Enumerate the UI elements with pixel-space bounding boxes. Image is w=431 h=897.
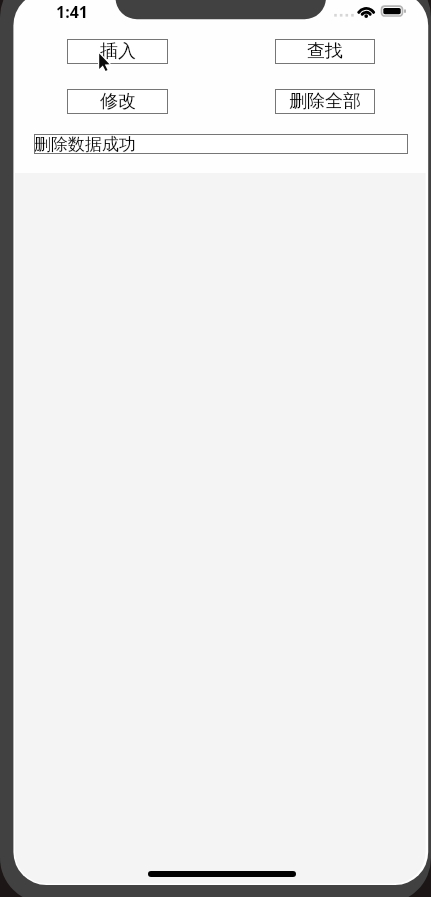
staticText: 1:41 bbox=[56, 1, 88, 23]
staticText: 删除全部 bbox=[289, 90, 361, 113]
staticText: 删除数据成功 bbox=[34, 134, 136, 154]
button[interactable]: 删除全部 bbox=[275, 89, 375, 114]
staticText: 查找 bbox=[307, 40, 343, 63]
button[interactable]: 删除数据成功 bbox=[34, 134, 408, 154]
staticText: 插入 bbox=[100, 40, 136, 63]
button[interactable]: 插入 bbox=[67, 39, 168, 64]
button[interactable]: 修改 bbox=[67, 89, 168, 114]
other: Status icons bbox=[330, 2, 410, 22]
button[interactable]: 查找 bbox=[275, 39, 375, 64]
staticText: 修改 bbox=[100, 90, 136, 113]
